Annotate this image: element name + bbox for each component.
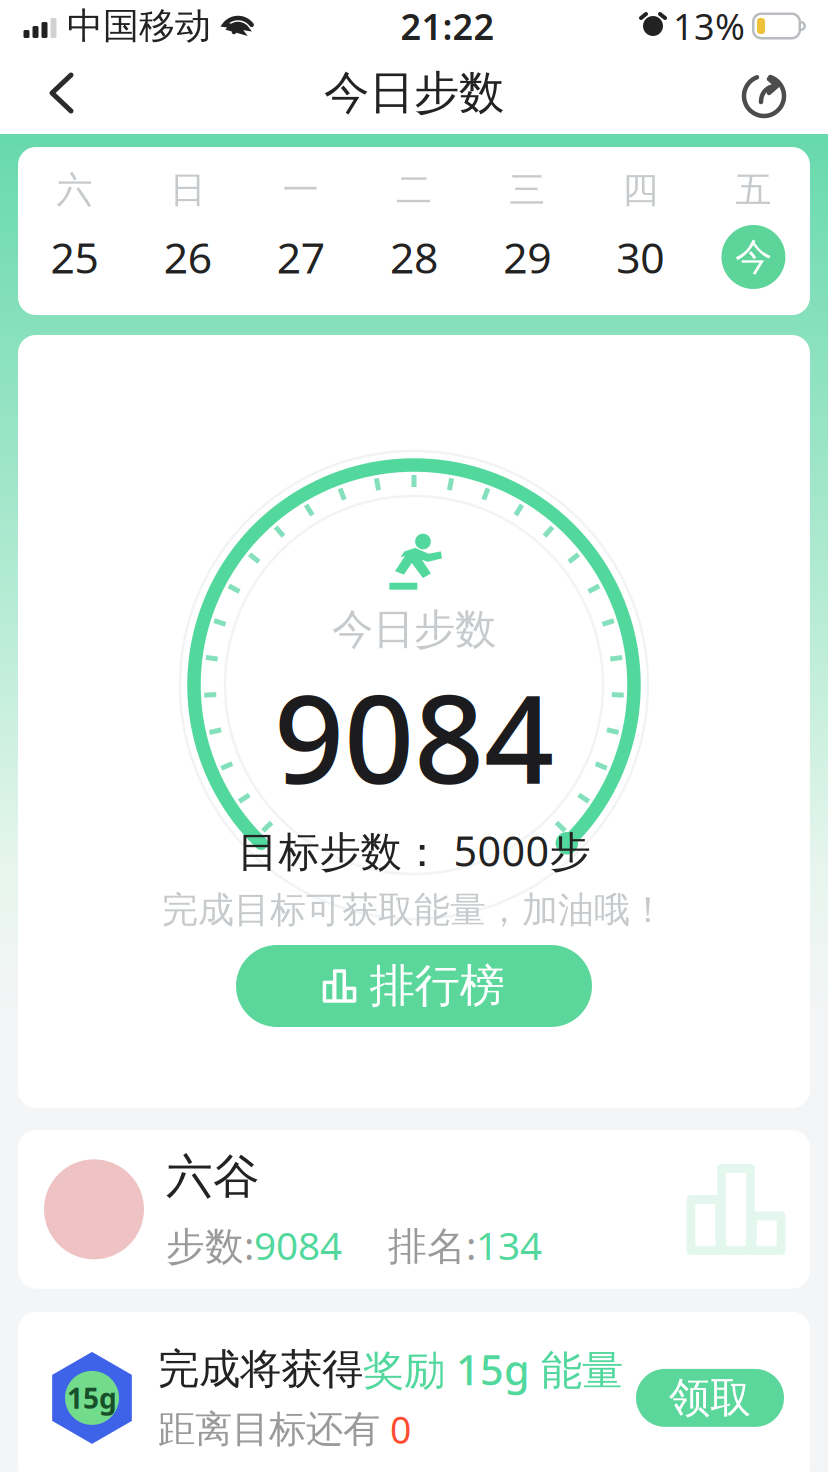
button[interactable]: 一 (244, 173, 357, 289)
staticText: 距离目标还有 (158, 1406, 380, 1452)
button[interactable]: 分享 (722, 53, 806, 133)
staticText: 28 (390, 229, 438, 285)
staticText: 26 (164, 229, 212, 285)
staticText: 六谷 (166, 1148, 260, 1205)
staticText: 六 (57, 168, 93, 212)
staticText: 今日步数 (332, 604, 496, 655)
staticText: 9084 (274, 655, 554, 818)
staticText: 134 (476, 1219, 542, 1271)
button[interactable]: 四 (584, 173, 697, 289)
staticText: 13% (673, 2, 745, 50)
button[interactable]: 返回 (22, 53, 100, 133)
staticText: 25 (51, 229, 99, 285)
staticText: 奖励 15g 能量 (363, 1342, 623, 1397)
button[interactable]: 领取 (636, 1369, 784, 1427)
button[interactable]: 六谷 (18, 1130, 810, 1289)
staticText: 9084 (254, 1219, 342, 1271)
staticText: 中国移动 (67, 4, 211, 48)
button[interactable]: 日 (131, 173, 244, 289)
staticText: 0 (380, 1405, 411, 1454)
staticText: 29 (503, 229, 551, 285)
button[interactable]: 五 (697, 173, 810, 289)
button[interactable]: 二 (357, 173, 470, 289)
staticText: 今 (735, 234, 772, 280)
staticText: 15g (67, 1379, 117, 1416)
staticText: 排行榜 (369, 958, 504, 1014)
staticText: 四 (622, 168, 658, 212)
staticText: 五 (735, 168, 771, 212)
staticText: 27 (277, 229, 325, 285)
staticText: 二 (396, 168, 432, 212)
staticText: 完成将获得 (158, 1344, 363, 1394)
button[interactable]: 三 (471, 173, 584, 289)
button[interactable]: 六 (18, 173, 131, 289)
staticText: 目标步数： 5000步 (237, 823, 590, 878)
staticText: 步数: (166, 1219, 254, 1271)
staticText: 30 (616, 229, 664, 285)
staticText: 今日步数 (324, 65, 504, 121)
staticText: 完成目标可获取能量，加油哦！ (162, 888, 666, 932)
staticText: 21:22 (400, 2, 494, 50)
staticText: 排名: (388, 1219, 476, 1271)
staticText: 三 (509, 168, 545, 212)
staticText: 领取 (669, 1372, 751, 1423)
button[interactable]: 排行榜 (236, 945, 592, 1027)
staticText: 日 (170, 168, 206, 212)
staticText: 一 (283, 168, 319, 212)
